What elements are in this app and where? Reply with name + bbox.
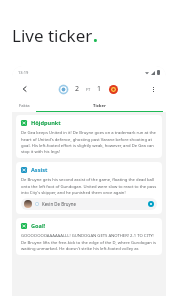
staticText: 2 [75, 84, 80, 94]
button[interactable]: More options [146, 82, 160, 96]
staticText: 13:19 [18, 70, 29, 75]
staticText: De Gea keeps United in it! De Bruyne goe… [21, 130, 157, 154]
staticText: Ticker [93, 103, 106, 109]
staticText: . [93, 24, 98, 47]
staticText: Kevin De Bruyne [42, 201, 76, 207]
button[interactable]: Höjdpunkt [16, 115, 162, 158]
staticText: Höjdpunkt [31, 119, 61, 127]
staticText: De Bruyne gets his second assist of the … [21, 177, 157, 195]
staticText: Assist [31, 166, 48, 174]
button[interactable]: Ticker [36, 100, 163, 112]
staticText: FT [86, 87, 91, 92]
staticText: Goal! [31, 222, 46, 230]
button[interactable]: Goal! [16, 218, 162, 255]
button[interactable]: Back [18, 82, 32, 96]
button[interactable]: Fakta [19, 100, 30, 112]
staticText: GOOOOOOOAAAAAALLL! GUNDOGAN GETS ANOTHER… [21, 233, 157, 251]
staticText: Live ticker [12, 24, 93, 47]
staticText: 1 [97, 84, 102, 94]
button[interactable]: Kevin De Bruyne [21, 198, 157, 210]
button[interactable]: Assist [16, 162, 162, 214]
staticText: Fakta [19, 103, 30, 109]
